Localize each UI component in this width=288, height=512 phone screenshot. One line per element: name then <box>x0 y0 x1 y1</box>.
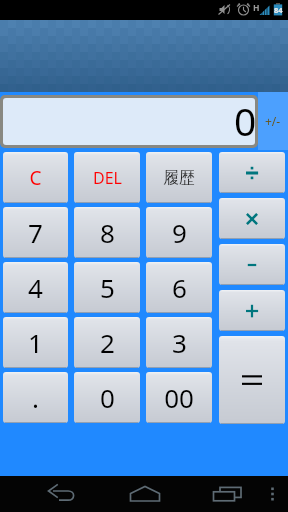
staticText: 7 <box>28 215 43 250</box>
staticText: DEL <box>93 167 122 189</box>
staticText: +/- <box>265 113 281 129</box>
staticText: 5 <box>100 270 115 305</box>
button[interactable]: 1 <box>3 317 68 368</box>
staticText: 3 <box>172 325 187 360</box>
button[interactable]: Home <box>117 476 173 512</box>
button[interactable]: 4 <box>3 262 68 313</box>
button[interactable]: 9 <box>146 207 212 258</box>
staticText: C <box>29 165 42 191</box>
button[interactable]: Recents <box>199 476 255 512</box>
button[interactable]: Multiply <box>219 198 285 239</box>
button[interactable]: More options <box>257 476 288 512</box>
staticText: H <box>253 2 260 14</box>
button[interactable]: 履歴 <box>146 152 212 203</box>
staticText: 1 <box>28 325 43 360</box>
button[interactable]: 2 <box>74 317 140 368</box>
button[interactable]: . <box>3 372 68 423</box>
button[interactable]: 00 <box>146 372 212 423</box>
staticText: 4 <box>28 270 43 305</box>
button[interactable]: 6 <box>146 262 212 313</box>
button[interactable]: 5 <box>74 262 140 313</box>
button[interactable]: Back <box>33 476 89 512</box>
button[interactable]: 8 <box>74 207 140 258</box>
button[interactable]: 0 <box>74 372 140 423</box>
staticText: 2 <box>100 325 115 360</box>
staticText: 履歴 <box>163 168 195 188</box>
button[interactable]: 3 <box>146 317 212 368</box>
staticText: 0 <box>100 380 115 415</box>
staticText: 8 <box>100 215 115 250</box>
staticText: 84 <box>274 5 283 15</box>
button[interactable]: Subtract <box>219 244 285 285</box>
button[interactable]: Add <box>219 290 285 331</box>
button[interactable]: Equals <box>219 336 285 424</box>
button[interactable]: DEL <box>74 152 140 203</box>
button[interactable]: C <box>3 152 68 203</box>
button[interactable]: Divide <box>219 152 285 193</box>
staticText: 9 <box>172 215 187 250</box>
button[interactable]: +/- <box>258 92 288 150</box>
staticText: 6 <box>172 270 187 305</box>
button[interactable]: 7 <box>3 207 68 258</box>
staticText: . <box>32 380 39 415</box>
staticText: 00 <box>164 380 194 415</box>
staticText: 0 <box>234 94 257 141</box>
